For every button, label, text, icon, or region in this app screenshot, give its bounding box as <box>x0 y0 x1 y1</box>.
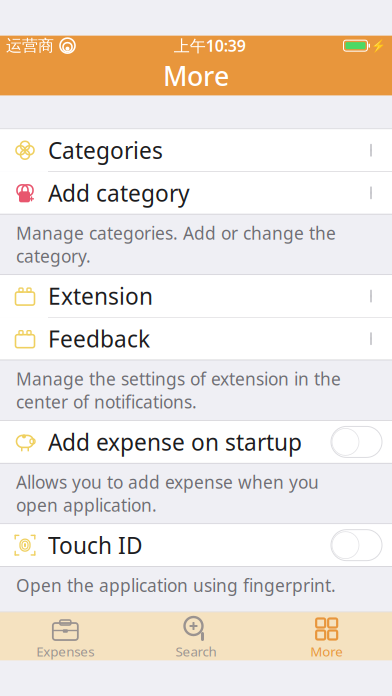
staticText: Touch ID <box>48 530 143 560</box>
staticText: Open the application using fingerprint. <box>16 574 336 597</box>
staticText: Categories <box>48 135 163 165</box>
staticText: ⚡ <box>371 39 386 52</box>
staticText: 上午10:39 <box>174 35 246 56</box>
staticText: Manage the settings of extension in the … <box>16 367 341 413</box>
button[interactable]: Extension <box>0 275 392 317</box>
staticText: Add category <box>48 178 190 208</box>
staticText: Allows you to add expense when you open … <box>16 470 319 516</box>
staticText: Extension <box>48 281 153 311</box>
staticText: Expenses <box>36 642 94 660</box>
button[interactable]: Expenses <box>0 612 131 660</box>
button[interactable]: Add expense on startup <box>331 426 382 457</box>
staticText: Add expense on startup <box>48 427 302 457</box>
button[interactable]: Touch ID <box>331 530 382 561</box>
button[interactable]: Feedback <box>0 318 392 360</box>
staticText: Search <box>175 642 216 660</box>
staticText: Feedback <box>48 324 150 354</box>
button[interactable]: Add category <box>0 172 392 214</box>
staticText: More <box>163 58 229 93</box>
staticText: 运营商 <box>6 36 54 55</box>
staticText: More <box>310 642 343 660</box>
button[interactable]: More <box>261 612 392 660</box>
button[interactable]: Categories <box>0 129 392 171</box>
button[interactable]: Search <box>131 612 261 660</box>
staticText: Manage categories. Add or change the cat… <box>16 221 336 267</box>
